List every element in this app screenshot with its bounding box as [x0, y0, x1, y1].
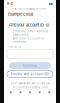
- staticText: Enter the email address associated: [12, 30, 47, 36]
- staticText: Continue: [23, 64, 37, 68]
- button[interactable]: Toolbar item: [6, 90, 16, 95]
- staticText: Trouble with account ID?: [10, 72, 49, 76]
- button[interactable]: Toolbar item: [25, 90, 35, 95]
- staticText: Don't have an account? Create one: [10, 82, 49, 85]
- staticText: with your account to continue.: [12, 37, 44, 44]
- button[interactable]: Toolbar item: [35, 90, 44, 95]
- staticText: Find your account ID: [9, 23, 44, 27]
- staticText: accounts.example.com: [14, 7, 45, 10]
- button[interactable]: Trouble with account ID?: [7, 71, 53, 78]
- staticText: Account ID: [8, 46, 21, 49]
- button[interactable]: Toolbar item: [16, 90, 25, 95]
- button[interactable]: Toolbar item: [44, 90, 54, 95]
- staticText: ▮▮: [49, 2, 53, 5]
- staticText: Example Cloud: [8, 12, 33, 17]
- staticText: accounts.example.com: [12, 86, 47, 89]
- staticText: 9:41: [7, 2, 13, 6]
- button[interactable]: Continue: [9, 62, 51, 69]
